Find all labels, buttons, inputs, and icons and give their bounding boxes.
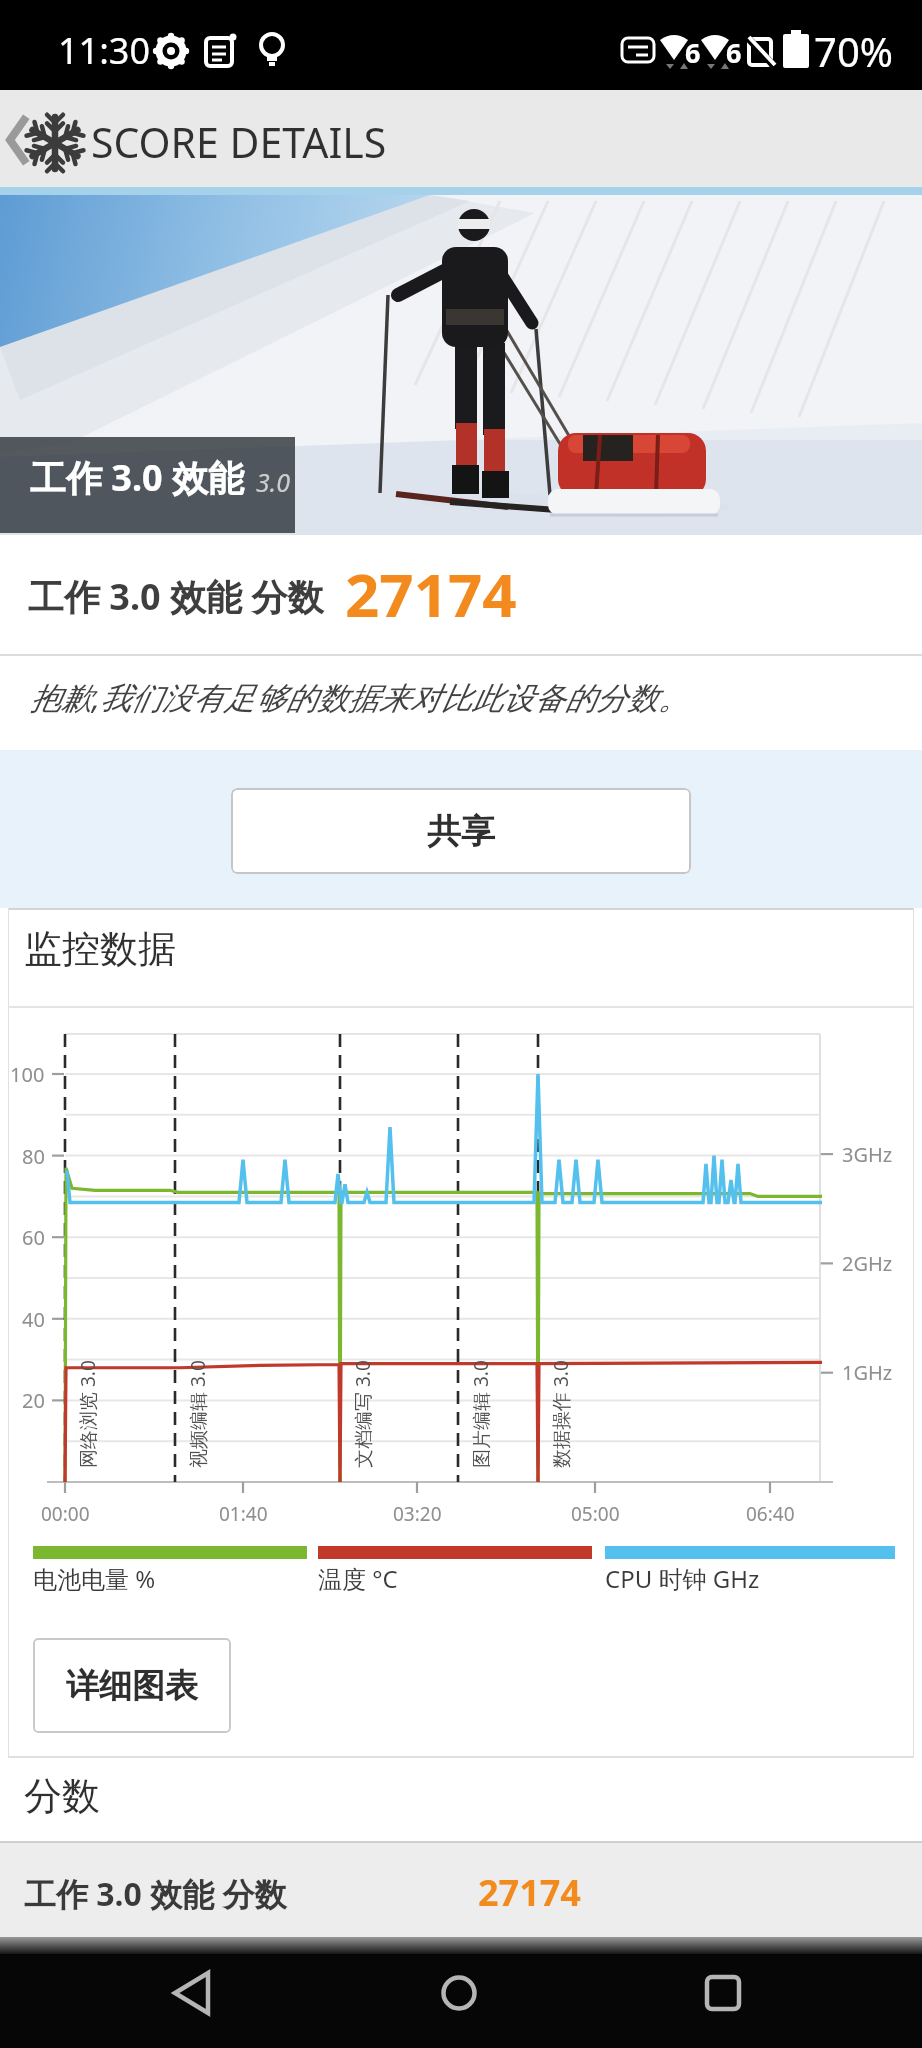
staticText: 00:00: [41, 1501, 90, 1527]
button[interactable]: SCORE DETAILS: [0, 90, 922, 187]
staticText: 11:30: [58, 26, 151, 75]
staticText: 80: [22, 1143, 45, 1170]
staticText: 温度 °C: [318, 1562, 398, 1595]
staticText: 图片编辑 3.0: [468, 1360, 494, 1468]
staticText: 1GHz: [842, 1359, 893, 1386]
staticText: 工作 3.0 效能 分数: [28, 572, 324, 621]
staticText: 工作 3.0 效能: [30, 453, 245, 502]
staticText: 3GHz: [842, 1141, 893, 1168]
staticText: 抱歉,我们没有足够的数据来对比此设备的分数。: [30, 676, 689, 718]
staticText: 01:40: [219, 1501, 268, 1527]
staticText: 05:00: [571, 1501, 620, 1527]
staticText: 工作 3.0 效能 分数: [24, 1872, 287, 1916]
staticText: 40: [22, 1306, 45, 1333]
staticText: 6: [685, 34, 701, 71]
staticText: 70%: [814, 24, 893, 78]
staticText: SCORE DETAILS: [91, 114, 387, 170]
staticText: 2GHz: [842, 1250, 893, 1277]
button[interactable]: [0, 1843, 922, 1937]
staticText: 视频编辑 3.0: [185, 1360, 211, 1468]
staticText: 3.0: [256, 465, 290, 499]
staticText: 网络浏览 3.0: [75, 1360, 101, 1468]
staticText: 27174: [478, 1868, 581, 1917]
staticText: 详细图表: [66, 1665, 198, 1707]
staticText: 06:40: [746, 1501, 795, 1527]
staticText: 分数: [24, 1772, 100, 1820]
staticText: 电池电量 %: [33, 1562, 156, 1595]
staticText: 文档编写 3.0: [350, 1360, 376, 1468]
staticText: 20: [22, 1387, 45, 1414]
button[interactable]: [441, 1975, 477, 2011]
button[interactable]: 共享: [231, 788, 691, 874]
staticText: 共享: [427, 810, 495, 853]
staticText: CPU 时钟 GHz: [605, 1562, 760, 1595]
staticText: 03:20: [393, 1501, 442, 1527]
staticText: 27174: [345, 553, 517, 635]
staticText: 60: [22, 1224, 45, 1251]
button[interactable]: [705, 1975, 741, 2011]
staticText: 监控数据: [24, 925, 176, 973]
button[interactable]: [172, 1970, 214, 2016]
staticText: 100: [10, 1061, 45, 1088]
staticText: 6: [726, 34, 742, 71]
button[interactable]: 详细图表: [33, 1638, 231, 1733]
staticText: 数据操作 3.0: [548, 1360, 574, 1468]
